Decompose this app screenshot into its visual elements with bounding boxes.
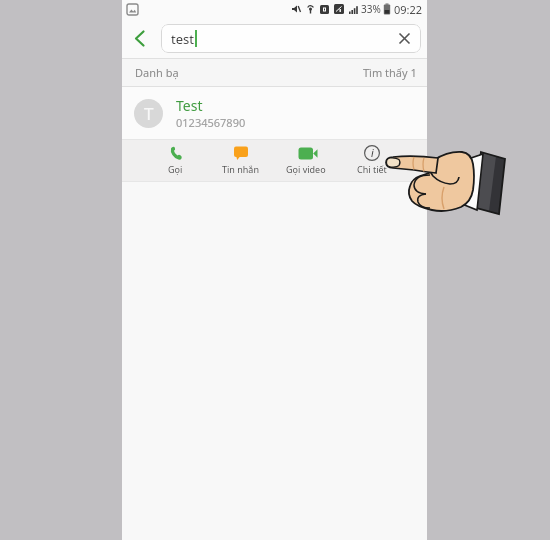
staticText: Test (176, 96, 203, 115)
button[interactable]: Tin nhắn (208, 140, 273, 181)
staticText: 33% (361, 2, 381, 16)
staticText: Danh bạ (135, 65, 179, 80)
staticText: Tìm thấy 1 (363, 65, 417, 80)
button[interactable]: Gọi (143, 140, 208, 181)
staticText: Gọi video (286, 163, 326, 175)
staticText: Gọi (168, 163, 183, 175)
button[interactable]: Gọi video (273, 140, 339, 181)
button[interactable] (122, 18, 158, 58)
button[interactable] (388, 24, 421, 53)
staticText: Chi tiết (357, 163, 387, 175)
button[interactable]: T (122, 87, 427, 139)
staticText: i (371, 146, 374, 160)
staticText: test (171, 30, 194, 48)
staticText: Tin nhắn (222, 163, 259, 175)
staticText: 01234567890 (176, 115, 246, 130)
staticText: 09:22 (394, 2, 423, 17)
staticText: T (144, 102, 154, 125)
button[interactable]: i (339, 140, 405, 181)
button[interactable]: test (161, 24, 421, 53)
